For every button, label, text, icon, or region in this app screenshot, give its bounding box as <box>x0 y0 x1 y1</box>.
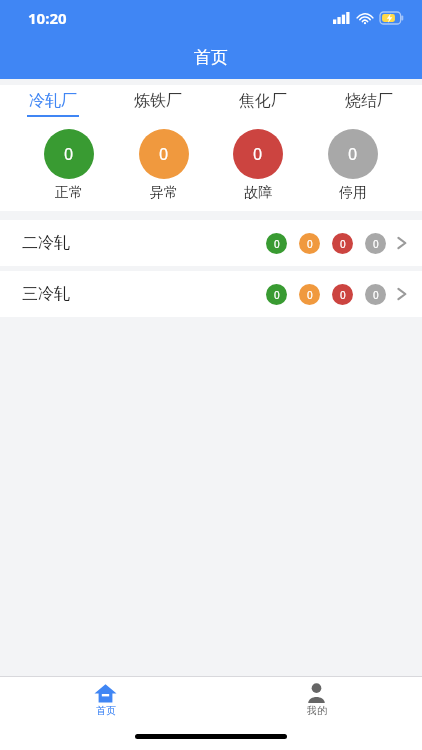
staticText: 焦化厂 <box>239 91 287 111</box>
staticText: 0 <box>373 237 379 251</box>
staticText: 0 <box>307 288 313 302</box>
staticText: 我的 <box>307 704 327 717</box>
staticText: 0 <box>373 288 379 302</box>
button[interactable]: 烧结厂 <box>316 85 422 123</box>
staticText: 0 <box>253 143 263 165</box>
button[interactable]: 焦化厂 <box>210 85 316 123</box>
staticText: 冷轧厂 <box>29 91 77 111</box>
staticText: 首页 <box>96 704 116 717</box>
button[interactable]: 0 <box>139 129 189 202</box>
staticText: 0 <box>159 143 169 165</box>
staticText: 二冷轧 <box>22 233 70 253</box>
button[interactable]: 炼铁厂 <box>105 85 210 123</box>
staticText: 0 <box>274 288 280 302</box>
staticText: 0 <box>64 143 74 165</box>
button[interactable]: 三冷轧 <box>0 271 422 317</box>
staticText: 正常 <box>55 184 83 202</box>
staticText: 炼铁厂 <box>134 91 182 111</box>
staticText: 0 <box>340 237 346 251</box>
button[interactable]: 首页 <box>80 681 131 719</box>
staticText: 停用 <box>339 184 367 202</box>
staticText: 首页 <box>194 47 228 68</box>
button[interactable]: 0 <box>44 129 94 202</box>
button[interactable]: 我的 <box>291 681 342 719</box>
staticText: 异常 <box>150 184 178 202</box>
staticText: 0 <box>348 143 358 165</box>
staticText: 烧结厂 <box>345 91 393 111</box>
button[interactable]: 二冷轧 <box>0 220 422 266</box>
button[interactable]: 0 <box>328 129 378 202</box>
staticText: 0 <box>274 237 280 251</box>
staticText: 0 <box>340 288 346 302</box>
button[interactable]: 冷轧厂 <box>0 85 105 123</box>
staticText: 故障 <box>244 184 272 202</box>
staticText: 0 <box>307 237 313 251</box>
staticText: 10:20 <box>28 8 67 28</box>
button[interactable]: 0 <box>233 129 283 202</box>
staticText: 三冷轧 <box>22 284 70 304</box>
